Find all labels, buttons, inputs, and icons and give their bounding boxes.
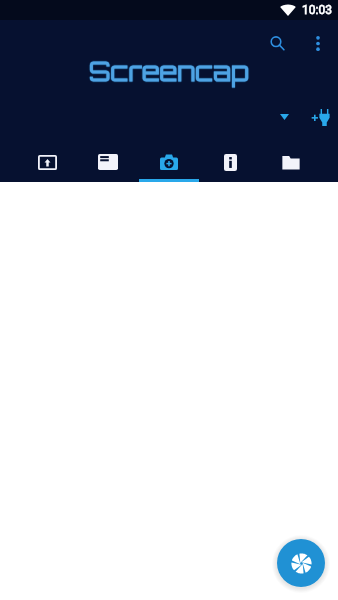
button[interactable]: Files: [261, 138, 321, 182]
button[interactable]: Take screenshot: [277, 539, 325, 587]
staticText: Screencap: [88, 55, 248, 88]
button[interactable]: Add connection: [302, 99, 338, 135]
staticText: Screencap: [90, 55, 250, 88]
staticText: Screencap: [89, 54, 249, 87]
staticText: Screencap: [89, 56, 249, 89]
button[interactable]: Camera: [139, 138, 199, 182]
button[interactable]: More options: [298, 23, 338, 63]
staticText: 10:03: [302, 3, 332, 17]
button[interactable]: Search: [257, 23, 297, 63]
button[interactable]: News: [78, 138, 138, 182]
button[interactable]: Cast screen: [17, 138, 77, 182]
button[interactable]: Device info: [200, 138, 260, 182]
staticText: Screencap: [89, 55, 249, 88]
button[interactable]: Select device: [268, 101, 300, 133]
